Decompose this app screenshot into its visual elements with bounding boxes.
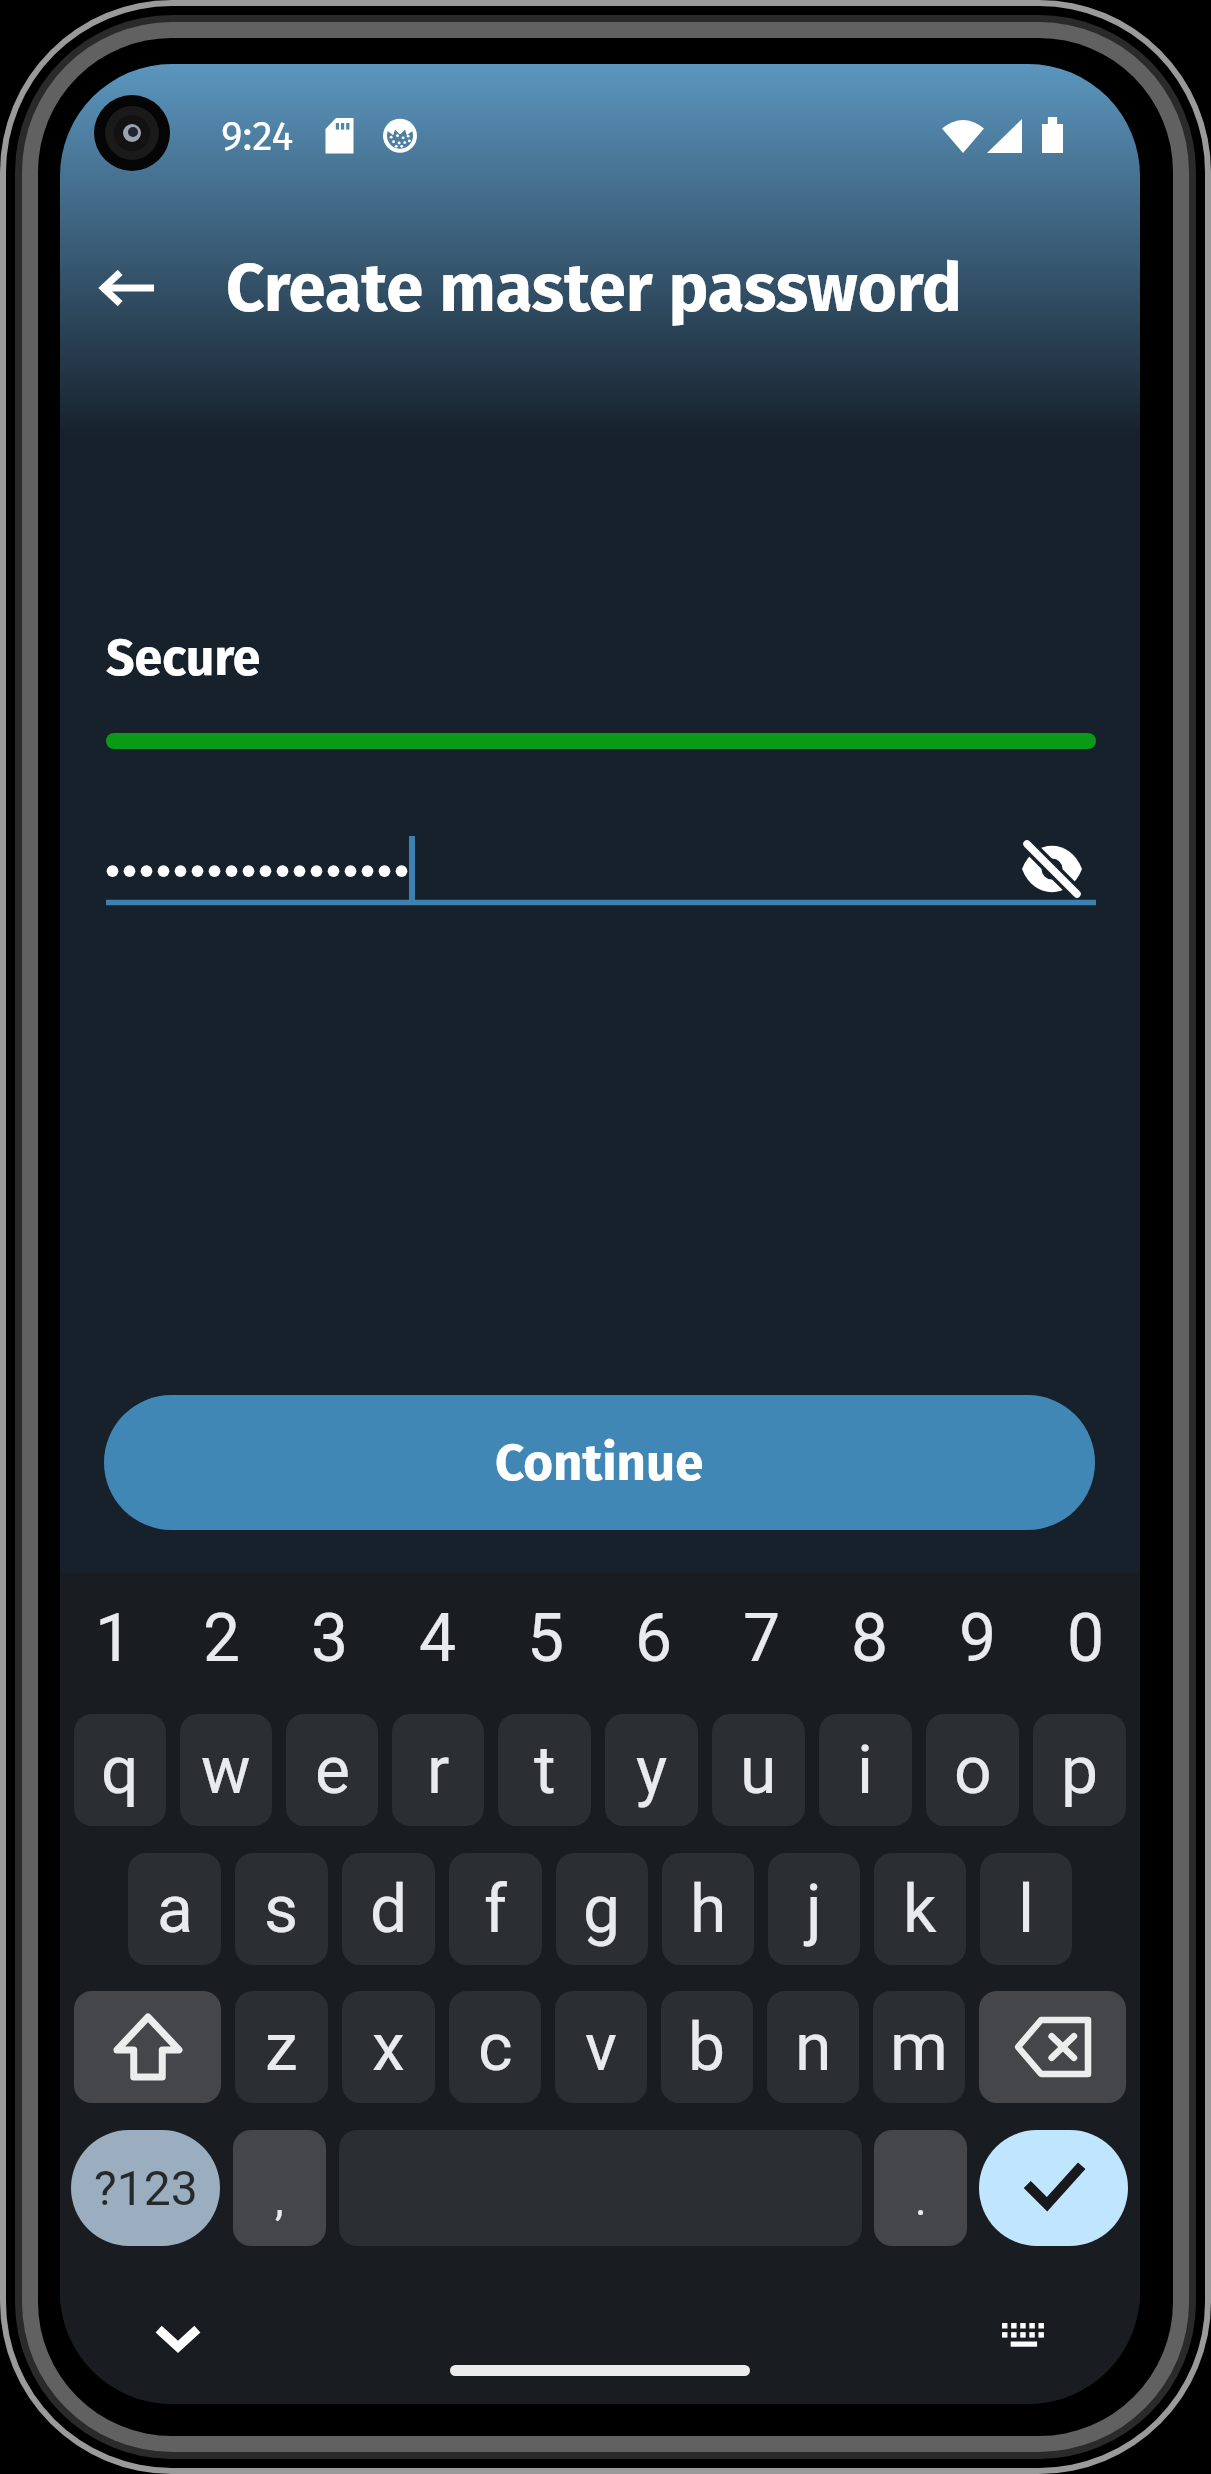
staticText: 6 [635,1600,673,1670]
staticText: j [806,1871,822,1948]
button[interactable]: Continue [104,1395,1095,1530]
button[interactable]: 1 [60,1600,168,1670]
button[interactable]: d [342,1853,435,1965]
staticText: z [265,2009,298,2086]
staticText: Secure [106,628,261,688]
staticText: h [690,1871,727,1948]
button[interactable]: 4 [384,1600,492,1670]
button[interactable]: m [873,1991,965,2103]
staticText: . [915,2174,927,2226]
staticText: 0 [1067,1600,1105,1670]
button[interactable]: h [662,1853,754,1965]
staticText: m [890,2009,948,2086]
staticText: e [315,1732,350,1809]
button[interactable]: p [1033,1714,1126,1826]
staticText: 8 [851,1600,889,1670]
staticText: s [264,1871,299,1948]
button[interactable]: q [74,1714,166,1826]
staticText: k [903,1871,937,1948]
staticText: Continue [495,1432,704,1493]
button[interactable]: 9 [924,1600,1032,1670]
staticText: v [585,2009,617,2086]
button[interactable]: ?123 [71,2130,220,2246]
staticText: a [157,1871,193,1948]
button[interactable]: 0 [1032,1600,1140,1670]
button[interactable]: 2 [168,1600,276,1670]
button[interactable]: Hide keyboard [130,2290,226,2386]
staticText: ?123 [94,2160,198,2216]
button[interactable]: v [555,1991,647,2103]
button[interactable]: 8 [816,1600,924,1670]
staticText: 7 [743,1600,781,1670]
staticText: b [688,2009,726,2086]
button[interactable]: b [661,1991,753,2103]
button[interactable]: e [286,1714,378,1826]
button[interactable]: Enter [979,2130,1128,2246]
staticText: 9:24 [221,112,294,161]
staticText: r [427,1732,450,1809]
button[interactable]: r [392,1714,484,1826]
button[interactable]: 5 [492,1600,600,1670]
staticText: l [1018,1871,1035,1948]
staticText: g [583,1871,621,1948]
button[interactable]: f [449,1853,542,1965]
staticText: n [795,2009,832,2086]
staticText: , [275,2174,284,2226]
staticText: u [740,1732,777,1809]
button[interactable]: w [180,1714,272,1826]
staticText: 3 [311,1600,349,1670]
button[interactable]: n [767,1991,859,2103]
button[interactable]: 7 [708,1600,816,1670]
button[interactable]: o [926,1714,1019,1826]
button[interactable]: 6 [600,1600,708,1670]
button[interactable]: y [605,1714,698,1826]
staticText: 5 [527,1600,565,1670]
button[interactable]: c [449,1991,541,2103]
staticText: 9 [959,1600,997,1670]
button[interactable]: l [980,1853,1072,1965]
button[interactable]: . [874,2130,967,2246]
button[interactable]: i [819,1714,912,1826]
button[interactable]: 3 [276,1600,384,1670]
button[interactable]: a [128,1853,221,1965]
button[interactable]: s [235,1853,328,1965]
staticText: Create master password [226,248,962,328]
staticText: i [857,1732,874,1809]
staticText: 2 [203,1600,241,1670]
button[interactable]: u [712,1714,805,1826]
staticText: q [101,1732,139,1809]
staticText: f [484,1871,507,1948]
button[interactable]: j [768,1853,860,1965]
button[interactable]: z [235,1991,328,2103]
staticText: t [534,1732,556,1809]
button[interactable]: x [342,1991,435,2103]
button[interactable]: t [498,1714,591,1826]
button[interactable]: Back [80,240,176,336]
staticText: p [1061,1732,1099,1809]
staticText: y [636,1732,668,1809]
staticText: d [370,1871,408,1948]
button[interactable]: Change keyboard [975,2291,1071,2387]
staticText: w [201,1732,251,1809]
staticText: c [478,2009,513,2086]
button[interactable]: g [556,1853,648,1965]
staticText: 1 [95,1600,133,1670]
staticText: o [954,1732,992,1809]
staticText: x [372,2009,405,2086]
button[interactable] [979,1991,1126,2103]
button[interactable] [74,1991,221,2103]
button[interactable]: Hide password [1012,829,1092,909]
button[interactable]: k [874,1853,966,1965]
button[interactable]: , [233,2130,326,2246]
staticText: 4 [419,1600,457,1670]
